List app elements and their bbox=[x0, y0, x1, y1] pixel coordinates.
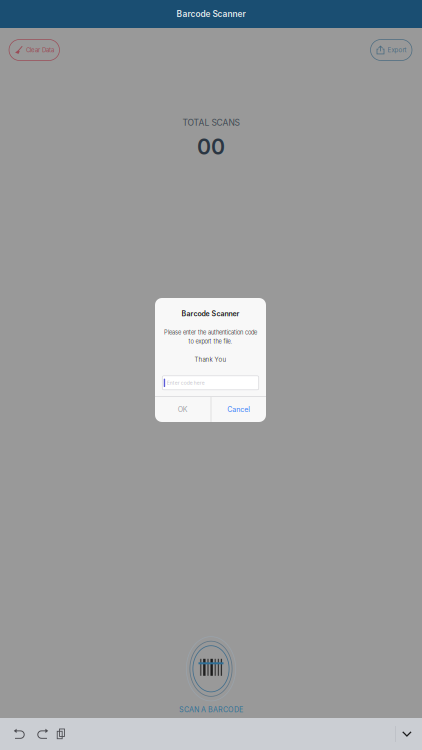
staticText: Export bbox=[387, 46, 406, 54]
button[interactable]: Undo bbox=[6, 718, 33, 750]
staticText: 00 bbox=[197, 134, 225, 160]
staticText: Barcode Scanner bbox=[176, 9, 245, 19]
button[interactable]: Clear Data bbox=[9, 39, 59, 60]
button[interactable]: Cancel bbox=[211, 397, 266, 422]
button[interactable]: SCAN A BARCODE bbox=[179, 635, 243, 714]
staticText: OK bbox=[178, 405, 188, 414]
staticText: Enter code here bbox=[167, 380, 205, 386]
button[interactable]: Paste bbox=[52, 718, 70, 750]
staticText: Clear Data bbox=[26, 46, 54, 54]
staticText: Barcode Scanner bbox=[181, 309, 239, 318]
staticText: Please enter the authentication code bbox=[164, 329, 257, 336]
staticText: TOTAL SCANS bbox=[182, 117, 239, 128]
staticText: Cancel bbox=[227, 405, 250, 414]
button[interactable]: Redo bbox=[33, 718, 52, 750]
button[interactable]: Export bbox=[370, 39, 412, 60]
staticText: SCAN A BARCODE bbox=[179, 705, 243, 714]
staticText: to export the file. bbox=[188, 338, 232, 345]
button[interactable]: OK bbox=[155, 397, 211, 422]
staticText: Thank You bbox=[194, 356, 226, 363]
button[interactable]: Hide keyboard bbox=[396, 718, 418, 750]
